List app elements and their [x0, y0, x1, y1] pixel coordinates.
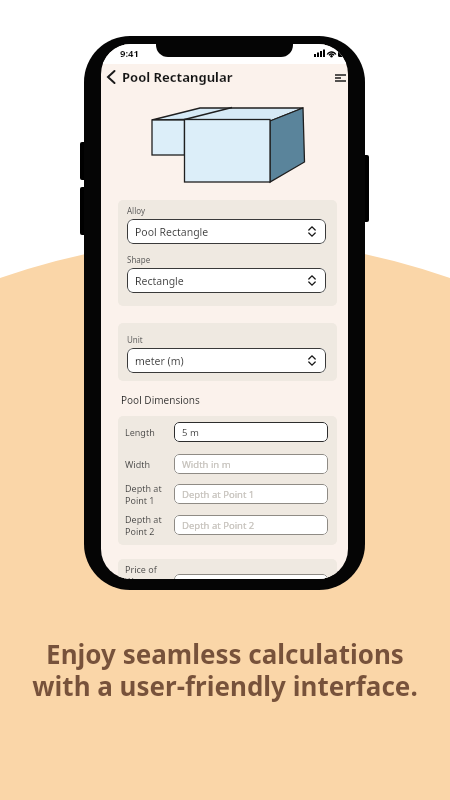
staticText: Width — [125, 458, 151, 470]
staticText: Unit — [127, 334, 143, 345]
staticText: Price of Water per — [125, 563, 167, 579]
staticText: Pool Dimensions — [121, 393, 200, 407]
staticText: Alloy — [127, 205, 145, 216]
staticText: Pool Rectangular — [122, 68, 233, 86]
staticText: Shape — [127, 254, 151, 265]
staticText: Rectangle — [135, 274, 184, 288]
staticText: Depth at Point 1 — [182, 488, 255, 501]
staticText: Depth at Point 1 — [125, 482, 162, 506]
staticText: Width in m — [182, 458, 231, 471]
staticText: Length — [125, 426, 155, 438]
staticText: meter (m) — [135, 354, 184, 368]
staticText: Depth at Point 2 — [125, 513, 162, 537]
staticText: 9:41 — [120, 47, 139, 60]
staticText: Pool Rectangle — [135, 225, 209, 239]
staticText: Depth at Point 2 — [182, 519, 255, 532]
staticText: 5 m — [182, 426, 199, 439]
staticText: Enjoy seamless calculations with a user-… — [32, 636, 418, 704]
